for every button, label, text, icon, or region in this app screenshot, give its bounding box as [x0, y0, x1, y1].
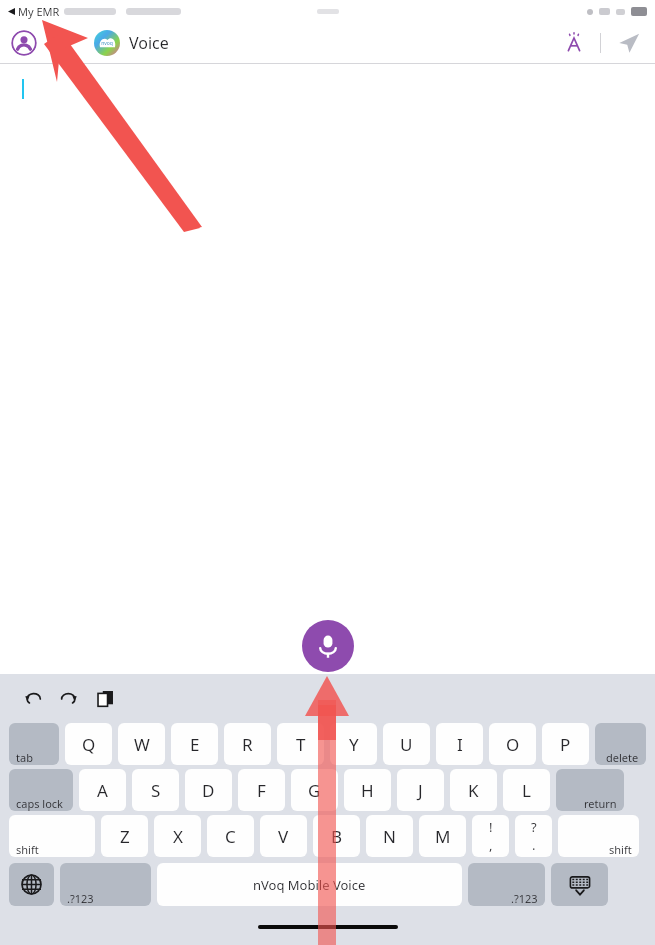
staticText: N: [383, 825, 396, 848]
button[interactable]: Undo: [18, 683, 48, 713]
staticText: D: [202, 779, 215, 802]
staticText: ,: [489, 836, 493, 854]
button[interactable]: Z: [101, 815, 148, 857]
button[interactable]: R: [224, 723, 271, 765]
staticText: delete: [606, 750, 639, 765]
button[interactable]: T: [277, 723, 324, 765]
button[interactable]: Send: [615, 29, 643, 57]
button[interactable]: shift: [558, 815, 639, 857]
staticText: shift: [609, 842, 632, 857]
button[interactable]: H: [344, 769, 391, 811]
button[interactable]: Change language: [9, 863, 54, 906]
button[interactable]: I: [436, 723, 483, 765]
button[interactable]: C: [207, 815, 254, 857]
staticText: Y: [349, 733, 359, 756]
staticText: L: [522, 779, 531, 802]
staticText: B: [331, 825, 343, 848]
staticText: .?123: [511, 891, 538, 906]
button[interactable]: V: [260, 815, 307, 857]
button[interactable]: P: [542, 723, 589, 765]
button[interactable]: B: [313, 815, 360, 857]
button[interactable]: L: [503, 769, 550, 811]
staticText: H: [361, 779, 374, 802]
staticText: U: [400, 733, 413, 756]
button[interactable]: !: [472, 815, 509, 857]
button[interactable]: A: [79, 769, 126, 811]
staticText: E: [190, 733, 200, 756]
staticText: P: [560, 733, 571, 756]
staticText: .?123: [67, 891, 94, 906]
button[interactable]: M: [419, 815, 466, 857]
button[interactable]: K: [450, 769, 497, 811]
staticText: F: [257, 779, 266, 802]
staticText: M: [435, 825, 451, 848]
staticText: My EMR: [18, 4, 60, 19]
button[interactable]: delete: [595, 723, 646, 765]
button[interactable]: D: [185, 769, 232, 811]
staticText: ?: [531, 818, 537, 836]
staticText: return: [584, 796, 617, 811]
button[interactable]: Paste: [90, 683, 120, 713]
button[interactable]: return: [556, 769, 624, 811]
staticText: C: [225, 825, 236, 848]
button[interactable]: Hide keyboard: [551, 863, 608, 906]
staticText: W: [134, 733, 150, 756]
button[interactable]: Record voice: [302, 620, 354, 672]
staticText: !: [489, 818, 493, 836]
button[interactable]: nVoq Mobile Voice: [157, 863, 462, 906]
staticText: O: [506, 733, 520, 756]
staticText: Voice: [129, 32, 169, 54]
button[interactable]: Redo: [53, 683, 83, 713]
button[interactable]: J: [397, 769, 444, 811]
staticText: shift: [16, 842, 39, 857]
staticText: I: [457, 733, 463, 756]
staticText: nvoq: [101, 40, 113, 47]
button[interactable]: U: [383, 723, 430, 765]
button[interactable]: Y: [330, 723, 377, 765]
staticText: V: [278, 825, 289, 848]
button[interactable]: ?: [515, 815, 552, 857]
staticText: K: [468, 779, 479, 802]
staticText: X: [173, 825, 183, 848]
button[interactable]: W: [118, 723, 165, 765]
button[interactable]: F: [238, 769, 285, 811]
staticText: J: [418, 779, 423, 802]
staticText: Z: [120, 825, 130, 848]
staticText: S: [151, 779, 161, 802]
staticText: nVoq Mobile Voice: [253, 876, 366, 894]
staticText: T: [296, 733, 306, 756]
button[interactable]: N: [366, 815, 413, 857]
button[interactable]: tab: [9, 723, 59, 765]
button[interactable]: .?123: [60, 863, 151, 906]
button[interactable]: S: [132, 769, 179, 811]
button[interactable]: caps lock: [9, 769, 73, 811]
staticText: caps lock: [16, 796, 63, 811]
staticText: R: [242, 733, 253, 756]
button[interactable]: O: [489, 723, 536, 765]
button[interactable]: Profile: [11, 30, 37, 56]
button[interactable]: X: [154, 815, 201, 857]
staticText: A: [97, 779, 108, 802]
staticText: G: [308, 779, 321, 802]
button[interactable]: AI text formatting: [560, 29, 588, 57]
button[interactable]: E: [171, 723, 218, 765]
staticText: .: [532, 836, 536, 854]
button[interactable]: Q: [65, 723, 112, 765]
staticText: Q: [82, 733, 96, 756]
button[interactable]: .?123: [468, 863, 545, 906]
staticText: tab: [16, 750, 33, 765]
button[interactable]: G: [291, 769, 338, 811]
button[interactable]: shift: [9, 815, 95, 857]
